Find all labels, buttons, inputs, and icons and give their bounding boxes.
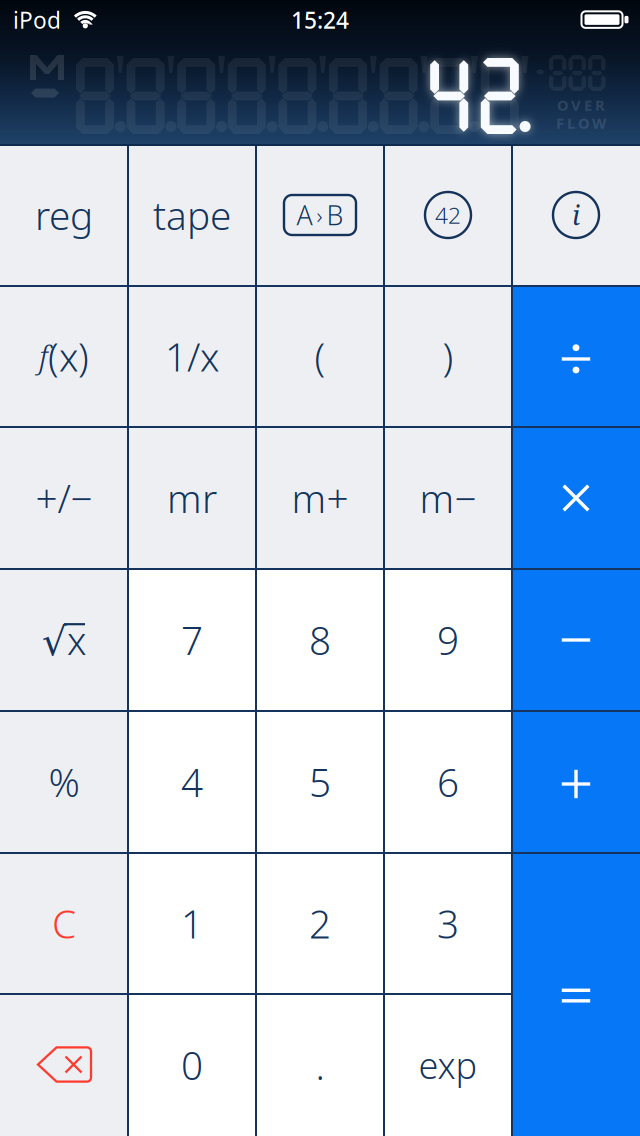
staticText: ( (314, 331, 325, 382)
button[interactable]: 1/x (128, 286, 256, 427)
button[interactable]: ( (256, 286, 384, 427)
button[interactable] (0, 994, 128, 1136)
button[interactable]: 0 (128, 994, 256, 1136)
button[interactable]: exp (384, 994, 512, 1136)
button[interactable]: 2 (256, 853, 384, 994)
button[interactable]: 3 (384, 853, 512, 994)
button[interactable] (512, 427, 640, 569)
button[interactable]: 5 (256, 711, 384, 853)
button[interactable]: . (256, 994, 384, 1136)
staticText: 6 (437, 756, 459, 808)
button[interactable]: 6 (384, 711, 512, 853)
staticText: 2 (309, 898, 331, 949)
button[interactable]: +/− (0, 427, 128, 569)
button[interactable]: % (0, 711, 128, 853)
button[interactable]: 8 (256, 569, 384, 711)
staticText: % (48, 756, 79, 808)
staticText: (x) (48, 331, 89, 382)
staticText: m+ (291, 472, 348, 524)
staticText: mr (167, 472, 217, 524)
staticText: √x (42, 614, 86, 666)
staticText: tape (153, 189, 231, 241)
button[interactable]: √x (0, 569, 128, 711)
button[interactable]: m− (384, 427, 512, 569)
button[interactable] (512, 286, 640, 427)
button[interactable]: A (256, 144, 384, 286)
staticText: f (39, 336, 48, 377)
button[interactable]: 4 (128, 711, 256, 853)
staticText: ) (442, 331, 453, 382)
staticText: +/− (35, 472, 92, 524)
staticText: . (315, 1039, 324, 1091)
button[interactable]: C (0, 853, 128, 994)
staticText: 4 (181, 756, 203, 808)
button[interactable]: 9 (384, 569, 512, 711)
button[interactable] (512, 853, 640, 1136)
staticText: i (572, 197, 580, 233)
staticText: 5 (309, 756, 331, 808)
button[interactable]: 42 (384, 144, 512, 286)
button[interactable] (512, 711, 640, 853)
button[interactable]: reg (0, 144, 128, 286)
staticText: 15:24 (291, 5, 349, 35)
staticText: 3 (437, 898, 459, 949)
staticText: 8 (309, 614, 331, 666)
button[interactable]: tape (128, 144, 256, 286)
button[interactable]: mr (128, 427, 256, 569)
staticText: FLOW (556, 113, 606, 133)
staticText: 0 (181, 1039, 203, 1091)
staticText: 7 (181, 614, 203, 666)
staticText: A (296, 197, 312, 233)
button[interactable]: f (0, 286, 128, 427)
staticText: 1/x (165, 331, 219, 382)
button[interactable]: i (512, 144, 640, 286)
staticText: m− (419, 472, 476, 524)
staticText: 42 (435, 200, 461, 230)
staticText: OVER (557, 95, 605, 115)
staticText: C (52, 898, 76, 949)
button[interactable]: ) (384, 286, 512, 427)
staticText: 9 (437, 614, 459, 666)
staticText: exp (418, 1041, 477, 1089)
staticText: reg (35, 189, 93, 241)
button[interactable]: m+ (256, 427, 384, 569)
button[interactable]: 1 (128, 853, 256, 994)
staticText: 1 (181, 898, 203, 949)
button[interactable]: 7 (128, 569, 256, 711)
button[interactable] (512, 569, 640, 711)
staticText: iPod (13, 5, 61, 35)
staticText: › (316, 200, 322, 230)
staticText: B (326, 197, 343, 233)
